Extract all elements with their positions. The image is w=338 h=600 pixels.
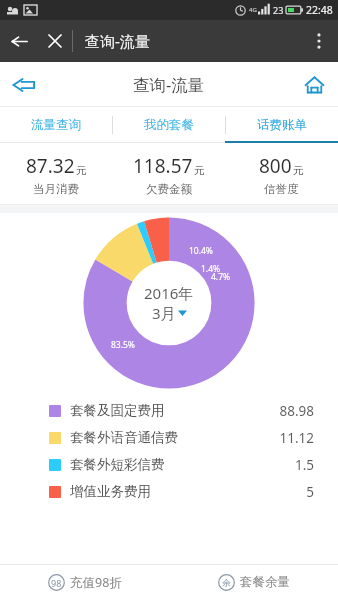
staticText: 元 [293,164,304,177]
staticText: 4G [249,6,257,14]
button[interactable]: Close [38,20,72,62]
staticText: 元 [194,164,205,177]
staticText: 1.5 [294,456,314,474]
staticText: 11.12 [279,429,314,447]
staticText: 22:48 [306,3,333,17]
staticText: 3月 [152,303,176,323]
button[interactable]: More options [300,20,338,62]
staticText: 4.7% [211,271,231,283]
staticText: 余 [222,577,231,588]
button[interactable]: 套餐外短彩信费 [0,451,338,478]
staticText: 元 [76,164,87,177]
staticText: 信誉度 [264,182,299,196]
staticText: 2016年 [144,283,194,303]
staticText: 87.32 [26,153,75,179]
staticText: 我的套餐 [144,117,194,133]
button[interactable]: 余 [169,564,338,600]
button[interactable]: 话费账单 [226,107,338,143]
staticText: 欠费金额 [146,182,192,196]
staticText: 充值98折 [70,574,122,591]
staticText: 800 [259,153,292,179]
button[interactable]: 我的套餐 [113,107,225,143]
button[interactable]: 98 [0,564,169,600]
button[interactable]: 87.32 [0,143,112,205]
button[interactable]: 套餐外语音通信费 [0,424,338,451]
button[interactable]: 流量查询 [0,107,112,143]
button[interactable]: Home [290,62,338,107]
staticText: 88.98 [279,402,314,420]
button[interactable]: 2016年 [144,283,194,323]
staticText: 当月消费 [33,182,79,196]
staticText: 98 [51,577,62,589]
staticText: 5 [306,483,314,501]
button[interactable]: 800 [225,143,338,205]
staticText: 增值业务费用 [70,483,151,500]
button[interactable]: Back [0,62,48,107]
button[interactable]: 118.57 [112,143,225,205]
button[interactable]: 增值业务费用 [0,478,338,505]
staticText: 套餐余量 [240,574,290,590]
staticText: 1.4% [201,263,221,275]
staticText: 套餐外短彩信费 [70,456,165,473]
staticText: 118.57 [133,153,193,179]
button[interactable]: Back [0,20,38,62]
staticText: 话费账单 [257,117,307,133]
staticText: 23 [273,4,284,16]
staticText: 83.5% [111,339,135,351]
staticText: 10.4% [189,245,213,257]
button[interactable]: 套餐及固定费用 [0,397,338,424]
staticText: 流量查询 [31,117,81,133]
staticText: 查询-流量 [133,73,205,96]
staticText: 查询-流量 [85,31,150,51]
staticText: 套餐及固定费用 [70,402,165,419]
staticText: 套餐外语音通信费 [70,429,178,446]
